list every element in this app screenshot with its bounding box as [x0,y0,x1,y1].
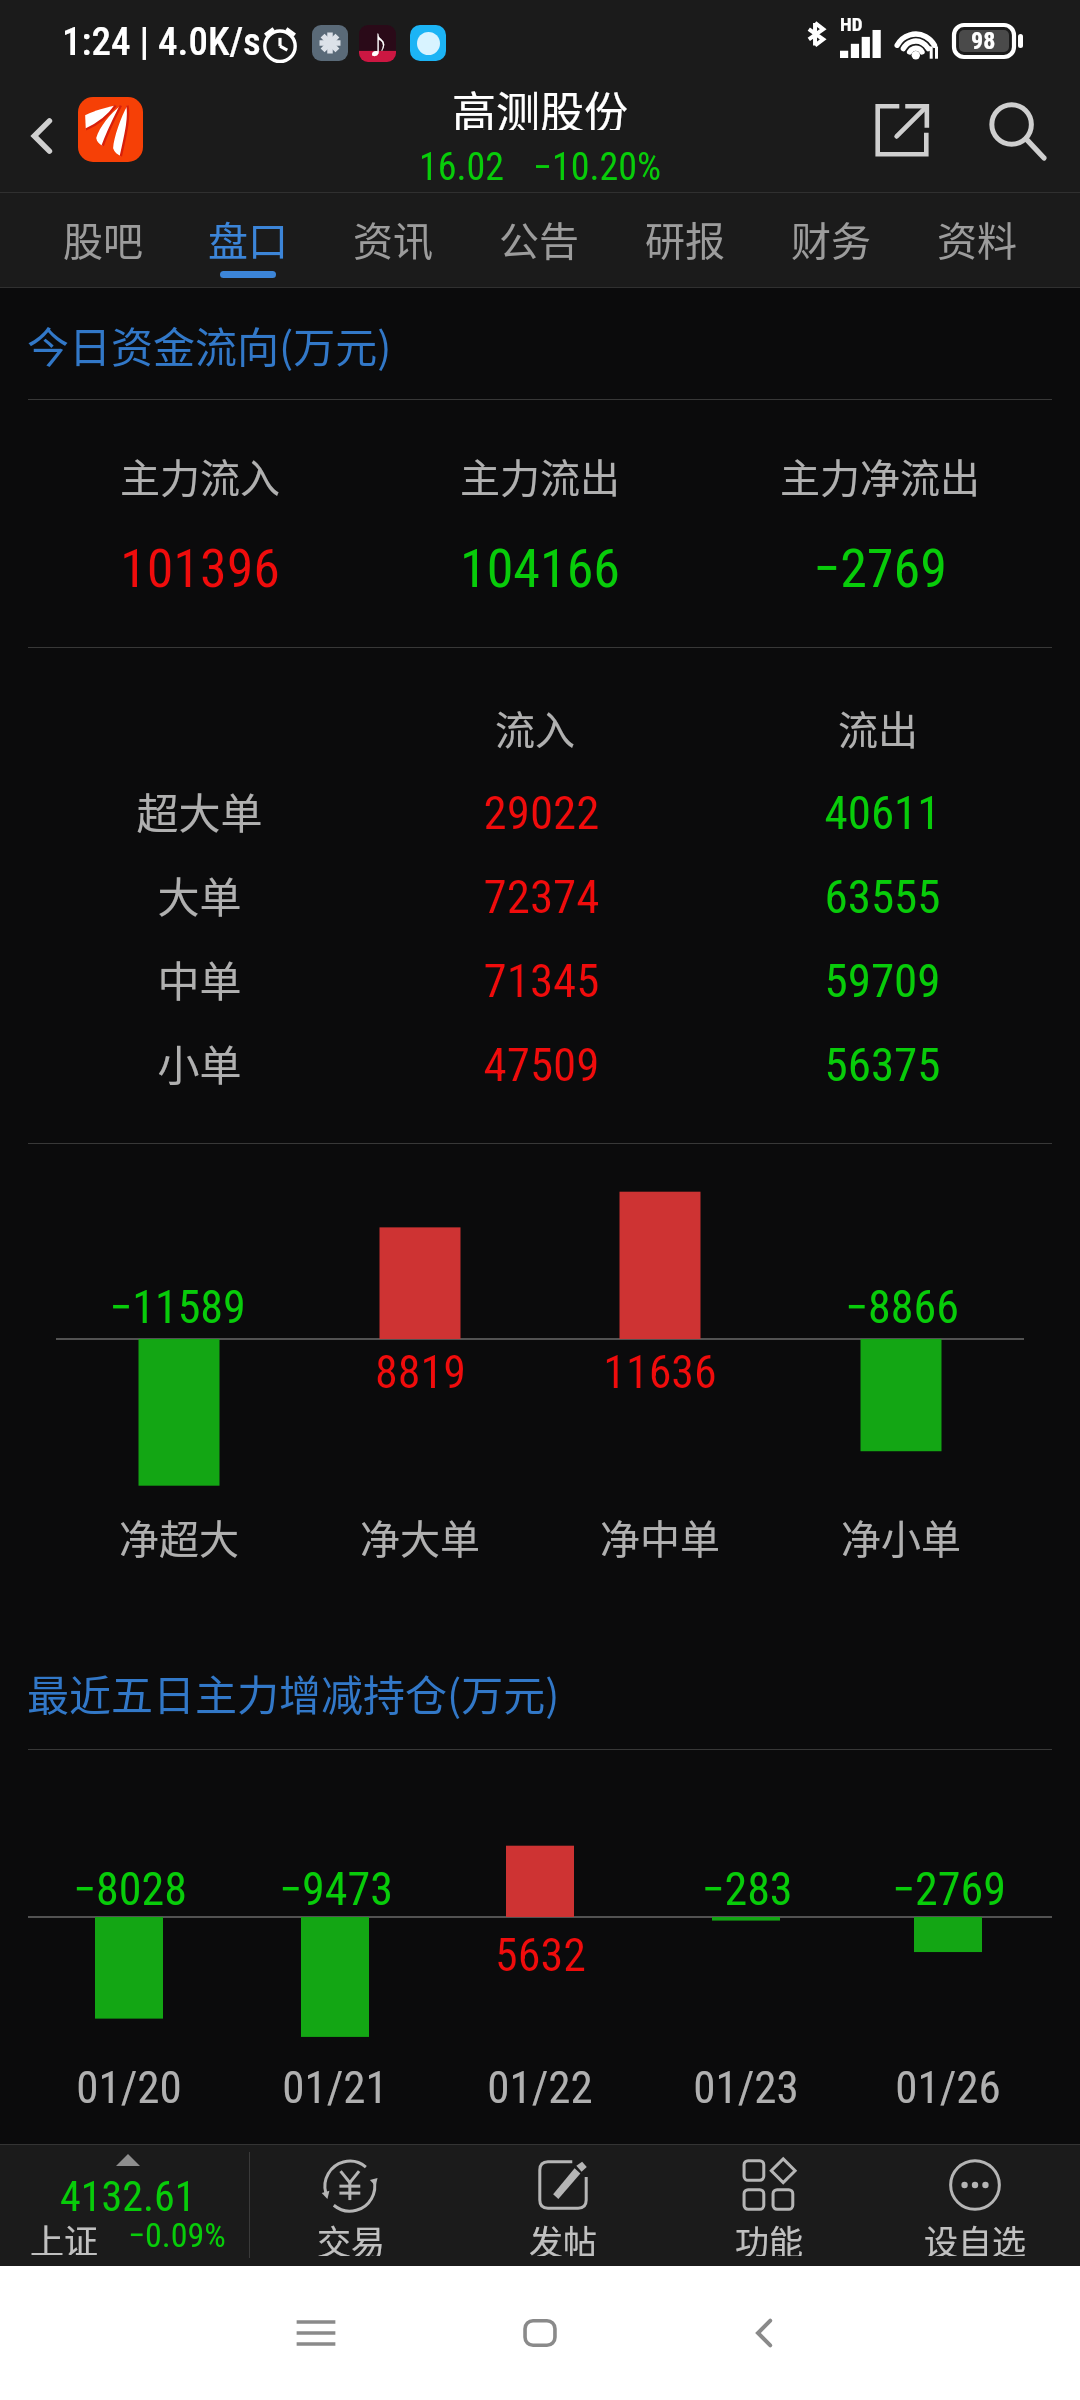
staticText: 16.02 [419,145,505,185]
staticText: 今日资金流向(万元) [27,314,392,375]
staticText: 主力流出 [460,447,620,505]
staticText: −11589 [109,1280,246,1334]
button[interactable]: 发帖 [463,2144,663,2266]
staticText: 大单 [157,864,242,925]
staticText: 小单 [157,1032,242,1093]
button[interactable]: Home [485,2266,595,2400]
staticText: 40611 [824,785,941,840]
button[interactable]: Recents [261,2266,371,2400]
staticText: 功能 [735,2216,803,2256]
staticText: 71345 [483,953,600,1008]
staticText: 流入 [495,699,575,757]
staticText: 01/23 [693,2061,799,2114]
staticText: 29022 [483,785,600,840]
staticText: 1:24 | 4.0K/s [62,19,261,65]
staticText: 净超大 [119,1508,239,1566]
button[interactable]: 财务 [758,193,904,287]
staticText: ♪ [366,26,390,61]
button[interactable]: 公告 [466,193,612,287]
staticText: 101396 [120,537,280,600]
staticText: −2769 [813,537,947,600]
staticText: HD [840,13,863,35]
staticText: −9473 [279,1862,393,1916]
staticText: 47509 [483,1037,600,1092]
staticText: 56375 [824,1037,941,1092]
button[interactable]: 股吧 [30,193,175,287]
staticText: 研报 [645,210,725,268]
button[interactable]: 4132.61 [7,2144,249,2266]
staticText: 流出 [838,699,918,757]
button[interactable]: 功能 [669,2144,869,2266]
staticText: 11636 [603,1345,717,1399]
staticText: 8819 [375,1345,466,1399]
staticText: 净中单 [600,1508,720,1566]
staticText: 63555 [824,869,941,924]
staticText: 59709 [824,953,941,1008]
staticText: 01/20 [76,2061,182,2114]
button[interactable]: 资料 [904,193,1050,287]
button[interactable]: 交易 [251,2144,451,2266]
staticText: −0.09% [128,2215,226,2255]
staticText: 资料 [937,210,1017,268]
staticText: 98 [971,27,996,55]
button[interactable]: 资讯 [320,193,466,287]
staticText: 主力流入 [120,447,280,505]
staticText: 股吧 [63,210,143,268]
button[interactable]: Share [856,84,948,176]
staticText: −283 [701,1862,793,1916]
staticText: 净大单 [360,1508,480,1566]
staticText: 5632 [495,1928,586,1982]
staticText: 4132.61 [60,2172,196,2214]
staticText: 交易 [317,2216,385,2256]
staticText: 盘口 [208,210,288,268]
staticText: 上证 [30,2215,98,2255]
staticText: 超大单 [136,780,263,841]
staticText: −8028 [73,1862,187,1916]
staticText: 公告 [499,210,579,268]
button[interactable]: Search [970,83,1064,177]
staticText: 高测股份 [452,78,628,130]
button[interactable]: 盘口 [175,193,320,287]
staticText: 104166 [460,537,620,600]
button[interactable]: Back [710,2266,820,2400]
staticText: 净小单 [841,1508,961,1566]
staticText: 72374 [483,869,600,924]
button[interactable]: 研报 [612,193,758,287]
staticText: −2769 [892,1862,1006,1916]
staticText: 01/21 [282,2061,388,2114]
staticText: 财务 [791,210,871,268]
staticText: −10.20% [533,145,662,185]
staticText: 主力净流出 [780,447,980,505]
staticText: 设自选 [924,2216,1026,2256]
button[interactable]: Back [0,80,86,192]
staticText: 最近五日主力增减持仓(万元) [27,1662,560,1723]
button[interactable]: 设自选 [875,2144,1075,2266]
staticText: 发帖 [529,2216,597,2256]
staticText: 01/22 [487,2061,593,2114]
staticText: −8866 [845,1280,959,1334]
staticText: 资讯 [353,210,433,268]
button[interactable]: App icon [78,97,143,162]
staticText: 中单 [157,948,242,1009]
staticText: 01/26 [895,2061,1001,2114]
